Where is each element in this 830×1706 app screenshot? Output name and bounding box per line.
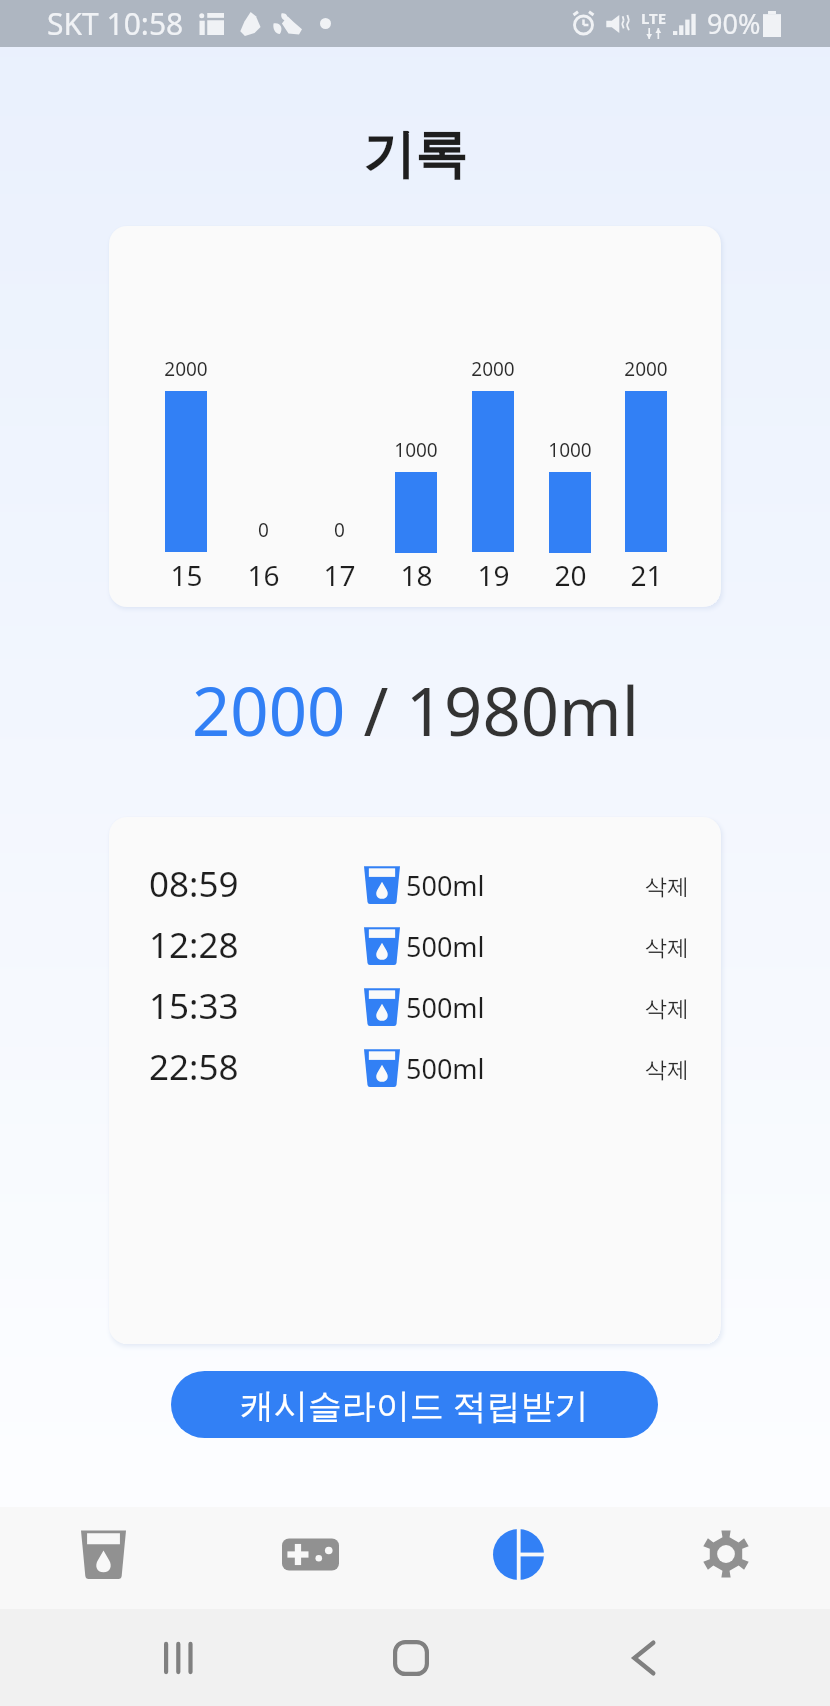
button[interactable]: Back bbox=[614, 1609, 674, 1706]
staticText: 08:59 bbox=[149, 860, 239, 908]
staticText: LTE bbox=[641, 8, 667, 28]
staticText: 500ml bbox=[406, 989, 485, 1026]
staticText: 15 bbox=[170, 556, 203, 594]
button[interactable]: Water log bbox=[0, 1507, 207, 1609]
staticText: 삭제 bbox=[645, 995, 689, 1023]
staticText: 12:28 bbox=[149, 921, 239, 969]
staticText: 90% bbox=[707, 5, 761, 42]
staticText: / 1980ml bbox=[346, 664, 639, 755]
button[interactable]: 15:33 bbox=[109, 975, 721, 1036]
staticText: 20 bbox=[554, 556, 587, 594]
staticText: 0 bbox=[334, 517, 345, 543]
staticText: 0 bbox=[258, 517, 269, 543]
button[interactable]: Home bbox=[381, 1609, 441, 1706]
staticText: 500ml bbox=[406, 1050, 485, 1087]
button[interactable]: Games bbox=[207, 1507, 414, 1609]
staticText: 500ml bbox=[406, 867, 485, 904]
button[interactable]: Recent apps bbox=[149, 1609, 209, 1706]
staticText: 18 bbox=[400, 556, 433, 594]
staticText: 캐시슬라이드 적립받기 bbox=[240, 1382, 589, 1428]
staticText: 16 bbox=[247, 556, 280, 594]
staticText: 2000 bbox=[471, 356, 515, 382]
staticText: 기록 bbox=[0, 122, 830, 188]
staticText: 삭제 bbox=[645, 1056, 689, 1084]
staticText: 21 bbox=[630, 556, 663, 594]
staticText: 삭제 bbox=[645, 873, 689, 901]
button[interactable]: Settings bbox=[622, 1507, 830, 1609]
staticText: 2000 bbox=[192, 664, 346, 755]
button[interactable]: 12:28 bbox=[109, 914, 721, 975]
staticText: 삭제 bbox=[645, 934, 689, 962]
staticText: 500ml bbox=[406, 928, 485, 965]
staticText: SKT 10:58 bbox=[47, 3, 184, 44]
staticText: 22:58 bbox=[149, 1043, 239, 1091]
button[interactable]: Statistics bbox=[414, 1507, 622, 1609]
staticText: 2000 bbox=[624, 356, 668, 382]
staticText: 17 bbox=[323, 556, 356, 594]
staticText: 1000 bbox=[548, 437, 592, 463]
staticText: 1000 bbox=[394, 437, 438, 463]
button[interactable]: 08:59 bbox=[109, 853, 721, 914]
button[interactable]: 캐시슬라이드 적립받기 bbox=[171, 1371, 658, 1438]
button[interactable]: 22:58 bbox=[109, 1036, 721, 1097]
staticText: 2000 bbox=[164, 356, 208, 382]
staticText: 15:33 bbox=[149, 982, 239, 1030]
staticText: 19 bbox=[477, 556, 510, 594]
